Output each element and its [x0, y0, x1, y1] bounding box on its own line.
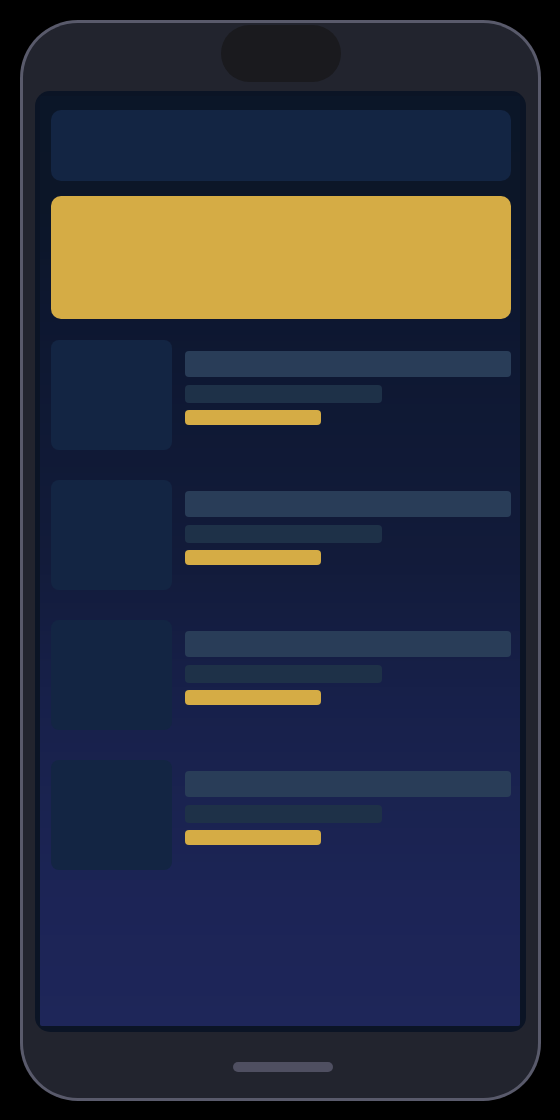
button[interactable]: List item [51, 340, 511, 450]
button[interactable]: List item [51, 620, 511, 730]
button[interactable]: List item [51, 760, 511, 870]
button[interactable]: Featured banner [51, 196, 511, 319]
button[interactable]: List item [51, 480, 511, 590]
